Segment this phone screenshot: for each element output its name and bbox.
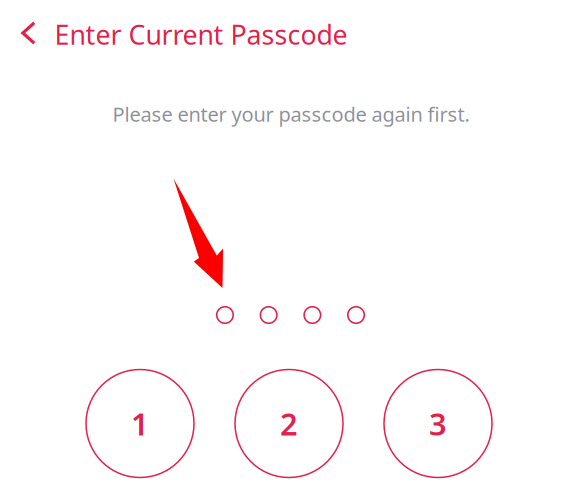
button[interactable]: 2 — [235, 369, 343, 477]
staticText: 1 — [131, 403, 149, 444]
button[interactable]: Back — [6, 11, 50, 55]
staticText: Please enter your passcode again first. — [112, 101, 469, 127]
staticText: 2 — [280, 403, 298, 444]
button[interactable]: 3 — [384, 369, 492, 477]
staticText: 3 — [429, 403, 447, 444]
button[interactable]: 1 — [86, 369, 194, 477]
staticText: Enter Current Passcode — [54, 17, 347, 52]
